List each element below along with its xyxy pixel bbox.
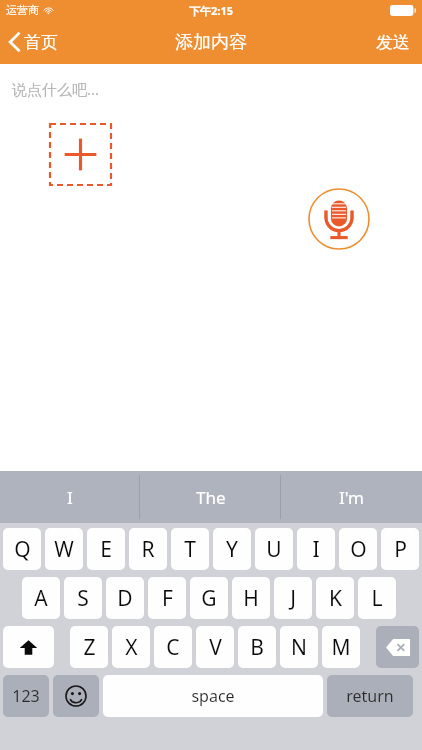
button[interactable]: Voice record (308, 188, 370, 250)
button[interactable]: T (171, 528, 209, 570)
button[interactable]: R (129, 528, 167, 570)
staticText: H (243, 584, 259, 613)
button[interactable]: U (255, 528, 293, 570)
button[interactable]: 发送 (364, 24, 422, 61)
button[interactable]: L (358, 577, 396, 619)
button[interactable]: J (274, 577, 312, 619)
staticText: Z (83, 633, 96, 662)
button[interactable]: N (280, 626, 318, 668)
staticText: 说点什么吧... (12, 79, 100, 99)
button[interactable]: I (297, 528, 335, 570)
button[interactable]: V (196, 626, 234, 668)
staticText: 发送 (376, 32, 410, 53)
staticText: D (117, 584, 133, 613)
staticText: 运营商 (6, 3, 39, 17)
staticText: M (331, 633, 351, 662)
button[interactable]: S (64, 577, 102, 619)
staticText: J (290, 584, 296, 613)
button[interactable]: X (112, 626, 150, 668)
button[interactable]: F (148, 577, 186, 619)
button[interactable]: K (316, 577, 354, 619)
staticText: I'm (339, 486, 364, 509)
button[interactable]: Backspace (376, 626, 419, 668)
button[interactable]: Emoji (53, 675, 99, 717)
staticText: G (201, 584, 217, 613)
staticText: K (329, 584, 342, 613)
button[interactable]: I (0, 471, 140, 523)
staticText: W (54, 535, 74, 564)
staticText: A (34, 584, 48, 613)
staticText: C (166, 633, 180, 662)
staticText: T (184, 535, 196, 564)
staticText: The (196, 486, 226, 509)
staticText: space (191, 685, 235, 707)
button[interactable]: C (154, 626, 192, 668)
button[interactable]: return (327, 675, 413, 717)
button[interactable]: Shift (3, 626, 54, 668)
button[interactable]: Q (3, 528, 41, 570)
staticText: B (250, 633, 264, 662)
button[interactable]: M (322, 626, 360, 668)
staticText: Q (14, 535, 31, 564)
staticText: Y (226, 535, 238, 564)
staticText: 下午2:15 (189, 3, 233, 18)
staticText: P (394, 535, 407, 564)
staticText: 添加内容 (175, 31, 247, 54)
staticText: S (77, 584, 89, 613)
staticText: 123 (12, 685, 40, 707)
button[interactable]: 123 (3, 675, 49, 717)
staticText: E (100, 535, 112, 564)
button[interactable]: The (140, 471, 281, 523)
button[interactable]: O (339, 528, 377, 570)
button[interactable]: A (22, 577, 60, 619)
button[interactable]: H (232, 577, 270, 619)
staticText: X (125, 633, 138, 662)
button[interactable]: P (381, 528, 419, 570)
button[interactable]: G (190, 577, 228, 619)
staticText: N (291, 633, 307, 662)
staticText: O (350, 535, 367, 564)
button[interactable]: Add photo (50, 124, 111, 185)
button[interactable]: 首页 (0, 25, 70, 59)
button[interactable]: I'm (281, 471, 422, 523)
staticText: U (266, 535, 282, 564)
button[interactable]: space (103, 675, 323, 717)
button[interactable]: W (45, 528, 83, 570)
staticText: L (371, 584, 383, 613)
staticText: F (162, 584, 173, 613)
button[interactable]: Y (213, 528, 251, 570)
button[interactable]: Z (70, 626, 108, 668)
staticText: I (67, 486, 73, 509)
button[interactable]: D (106, 577, 144, 619)
staticText: 首页 (24, 32, 58, 53)
staticText: R (141, 535, 155, 564)
staticText: V (209, 633, 222, 662)
button[interactable]: B (238, 626, 276, 668)
button[interactable]: E (87, 528, 125, 570)
staticText: I (312, 535, 320, 564)
staticText: return (346, 685, 394, 707)
